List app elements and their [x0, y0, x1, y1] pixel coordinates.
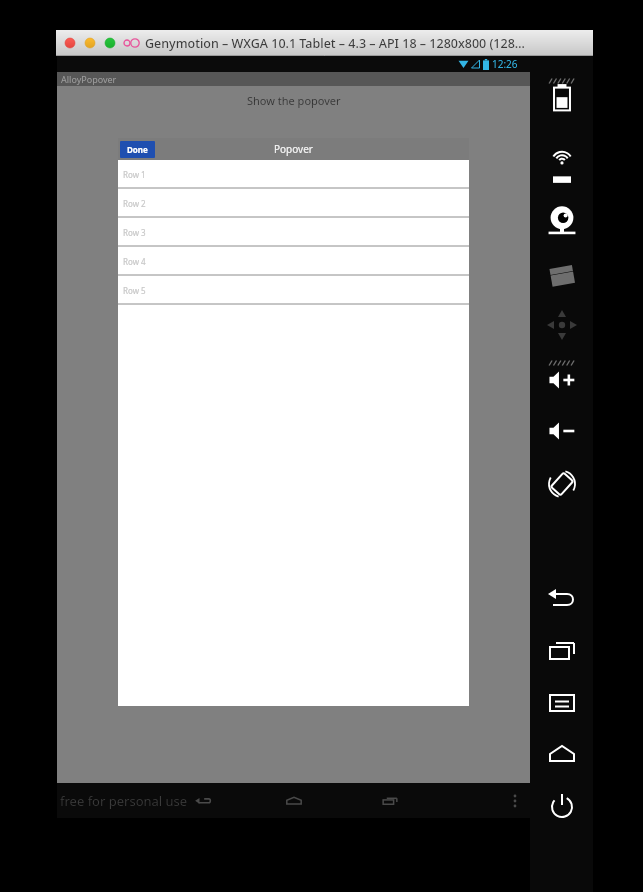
button[interactable]: Row 5: [118, 276, 469, 305]
button[interactable]: Volume down: [543, 412, 581, 450]
button[interactable]: Show the popover: [247, 93, 341, 108]
button[interactable]: Row 1: [118, 160, 469, 189]
button[interactable]: Back: [188, 787, 216, 815]
staticText: Row 4: [123, 256, 146, 267]
button[interactable]: Minimise: [84, 37, 96, 49]
button[interactable]: D-pad: [543, 306, 581, 344]
button[interactable]: Row 4: [118, 247, 469, 276]
button[interactable]: Camera: [543, 201, 581, 239]
button[interactable]: Volume up: [543, 361, 581, 399]
staticText: Popover: [274, 142, 313, 156]
button[interactable]: Home: [543, 736, 581, 774]
button[interactable]: GPS: [543, 149, 581, 187]
button[interactable]: Menu: [543, 684, 581, 722]
staticText: AlloyPopover: [61, 73, 117, 85]
button[interactable]: Recent apps: [543, 632, 581, 670]
button[interactable]: Row 3: [118, 218, 469, 247]
button[interactable]: Rotate: [543, 465, 581, 503]
staticText: Row 1: [123, 169, 146, 180]
staticText: Genymotion – WXGA 10.1 Tablet – 4.3 – AP…: [145, 35, 525, 52]
button[interactable]: Battery: [543, 78, 581, 116]
button[interactable]: Battery drag handle: [543, 62, 581, 100]
button[interactable]: Close: [64, 37, 76, 49]
button[interactable]: Row 2: [118, 189, 469, 218]
staticText: Done: [127, 144, 148, 155]
button[interactable]: More options: [501, 787, 529, 815]
button[interactable]: Recent apps: [376, 787, 404, 815]
staticText: Row 3: [123, 227, 146, 238]
staticText: Row 2: [123, 198, 146, 209]
staticText: free for personal use: [60, 792, 188, 810]
staticText: Row 5: [123, 285, 146, 296]
staticText: 12:26: [492, 57, 518, 71]
button[interactable]: Screen recorder: [543, 254, 581, 292]
button[interactable]: Back: [543, 580, 581, 618]
button[interactable]: Volume drag handle: [543, 344, 581, 382]
button[interactable]: Power: [543, 788, 581, 826]
button[interactable]: Zoom: [104, 37, 116, 49]
button[interactable]: Done: [120, 141, 155, 158]
button[interactable]: Home: [280, 787, 308, 815]
